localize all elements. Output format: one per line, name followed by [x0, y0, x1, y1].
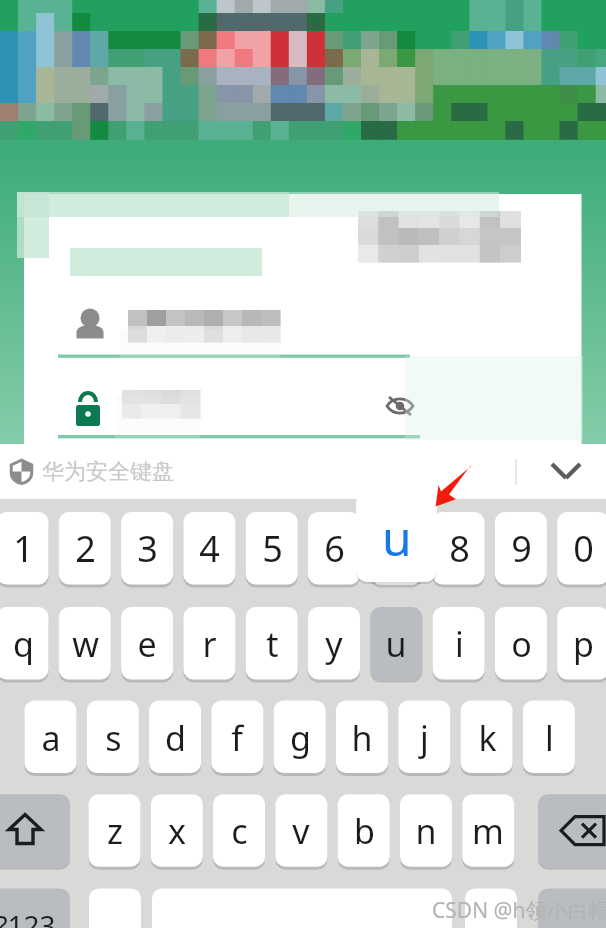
staticText: 4	[199, 524, 220, 573]
button[interactable]: n	[400, 794, 452, 867]
button[interactable]: r	[183, 607, 235, 680]
button[interactable]: k	[461, 701, 513, 774]
staticText: z	[107, 808, 123, 854]
button[interactable]: 0	[557, 512, 606, 585]
staticText: 1	[13, 524, 34, 573]
staticText: x	[168, 808, 186, 854]
staticText: i	[455, 621, 464, 667]
staticText: 8	[449, 524, 470, 573]
staticText: w	[72, 621, 99, 667]
staticText: 3	[137, 524, 158, 573]
button[interactable]: ?123	[0, 888, 70, 928]
staticText: l	[545, 715, 554, 761]
staticText: b	[354, 808, 375, 854]
button[interactable]: a	[25, 701, 77, 774]
staticText: j	[420, 715, 429, 761]
staticText: a	[41, 715, 61, 761]
button[interactable]: 4	[183, 512, 235, 585]
button[interactable]: 6	[308, 512, 360, 585]
staticText: u	[385, 621, 407, 667]
button[interactable]: p	[557, 607, 606, 680]
button[interactable]: u	[370, 607, 422, 680]
button[interactable]: g	[274, 701, 326, 774]
button[interactable]: v	[275, 794, 327, 867]
staticText: 9	[511, 524, 532, 573]
button[interactable]: u	[356, 492, 437, 582]
staticText: r	[202, 621, 217, 667]
button[interactable]: 8	[433, 512, 485, 585]
staticText: 6	[324, 524, 345, 573]
button[interactable]: 1	[0, 512, 49, 585]
staticText: m	[472, 808, 504, 854]
button[interactable]: l	[523, 701, 575, 774]
button[interactable]: o	[495, 607, 547, 680]
staticText: k	[478, 715, 497, 761]
button[interactable]: w	[59, 607, 111, 680]
staticText: ?123	[0, 906, 56, 928]
staticText: f	[231, 715, 243, 761]
staticText: y	[325, 621, 343, 667]
staticText: q	[13, 621, 34, 667]
button[interactable]: t	[246, 607, 298, 680]
button[interactable]: h	[336, 701, 388, 774]
staticText: n	[415, 808, 437, 854]
staticText: CSDN @h领小白帽	[432, 896, 606, 925]
staticText: 2	[75, 524, 96, 573]
button[interactable]: f	[211, 701, 263, 774]
button[interactable]: c	[213, 794, 265, 867]
button[interactable]: d	[149, 701, 201, 774]
button[interactable]: s	[87, 701, 139, 774]
button[interactable]: m	[462, 794, 514, 867]
staticText: 0	[573, 524, 594, 573]
button[interactable]: Collapse keyboard	[536, 448, 592, 496]
button[interactable]: y	[308, 607, 360, 680]
staticText: t	[266, 621, 279, 667]
button[interactable]: 3	[121, 512, 173, 585]
button[interactable]: q	[0, 607, 49, 680]
staticText: h	[351, 715, 373, 761]
staticText: 5	[262, 524, 283, 573]
button[interactable]: 2	[59, 512, 111, 585]
button[interactable]: 9	[495, 512, 547, 585]
button[interactable]: b	[338, 794, 390, 867]
button[interactable]: x	[151, 794, 203, 867]
staticText: 7	[386, 524, 407, 573]
button[interactable]: i	[433, 607, 485, 680]
button[interactable]: j	[398, 701, 450, 774]
staticText: c	[231, 808, 248, 854]
button[interactable]: Huawei secure keyboard	[0, 444, 42, 499]
staticText: d	[165, 715, 186, 761]
staticText: u	[382, 505, 412, 570]
button[interactable]: 7	[370, 512, 422, 585]
staticText: e	[137, 621, 157, 667]
staticText: s	[105, 715, 122, 761]
staticText: o	[511, 621, 532, 667]
staticText: p	[573, 621, 594, 667]
button[interactable]: e	[121, 607, 173, 680]
staticText: g	[290, 715, 311, 761]
staticText: v	[292, 808, 310, 854]
button[interactable]: z	[89, 794, 141, 867]
button[interactable]: 5	[246, 512, 298, 585]
staticText: 华为安全键盘	[42, 458, 174, 486]
